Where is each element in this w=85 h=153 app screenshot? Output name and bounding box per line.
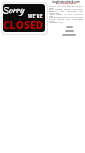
staticText: right away. If not, contact the — [49, 12, 83, 18]
staticText: site, please renew the plan now — [49, 7, 83, 13]
staticText: buyletterscheck.com — [49, 0, 83, 4]
button[interactable]: abcdef — [62, 34, 76, 36]
staticText: more about this message here. — [49, 17, 83, 23]
staticText: Sorry we're closed — [49, 2, 83, 5]
staticText: If you are the owner of this web — [49, 4, 83, 10]
button[interactable]: ab — [66, 26, 73, 28]
staticText: WE'RE — [28, 13, 43, 19]
staticText: Sorry — [2, 3, 24, 16]
staticText: Thanks a lot. — [49, 20, 83, 23]
staticText: so all the services get restored — [49, 9, 83, 15]
staticText: CLOSED — [3, 18, 44, 32]
staticText: site administrator to find out — [49, 15, 83, 18]
button[interactable]: abc — [65, 30, 74, 32]
